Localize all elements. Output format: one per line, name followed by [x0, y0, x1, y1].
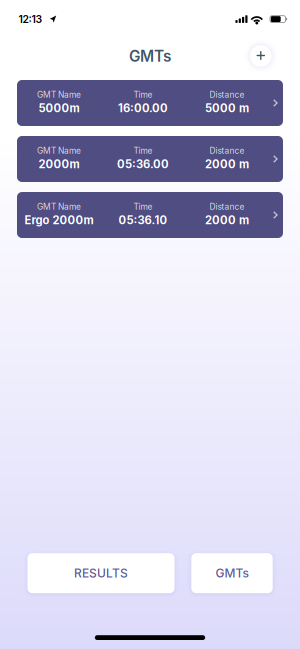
staticText: Time — [133, 89, 152, 100]
staticText: GMTs — [215, 566, 248, 580]
staticText: Time — [133, 145, 152, 156]
staticText: GMT Name — [37, 89, 81, 100]
staticText: 5000m — [38, 101, 79, 115]
button[interactable]: GMT Name — [17, 136, 283, 182]
staticText: Time — [133, 201, 152, 212]
button[interactable]: Add GMT — [250, 45, 272, 67]
staticText: 12:13 — [18, 13, 42, 25]
staticText: RESULTS — [74, 566, 128, 580]
staticText: 16:00.00 — [118, 101, 168, 115]
staticText: Distance — [209, 201, 244, 212]
staticText: 2000 m — [205, 157, 249, 171]
staticText: 2000 m — [205, 213, 249, 227]
staticText: GMTs — [129, 47, 171, 65]
staticText: Distance — [209, 145, 244, 156]
staticText: GMT Name — [37, 201, 81, 212]
button[interactable]: GMTs — [191, 553, 273, 593]
button[interactable]: GMT Name — [17, 80, 283, 126]
staticText: 2000m — [38, 157, 79, 171]
staticText: 05:36.00 — [117, 157, 169, 171]
button[interactable]: RESULTS — [27, 553, 174, 593]
staticText: 5000 m — [205, 101, 249, 115]
staticText: Distance — [209, 89, 244, 100]
staticText: 05:36.10 — [118, 213, 167, 227]
staticText: Ergo 2000m — [24, 213, 93, 227]
staticText: GMT Name — [37, 145, 81, 156]
button[interactable]: GMT Name — [17, 192, 283, 238]
